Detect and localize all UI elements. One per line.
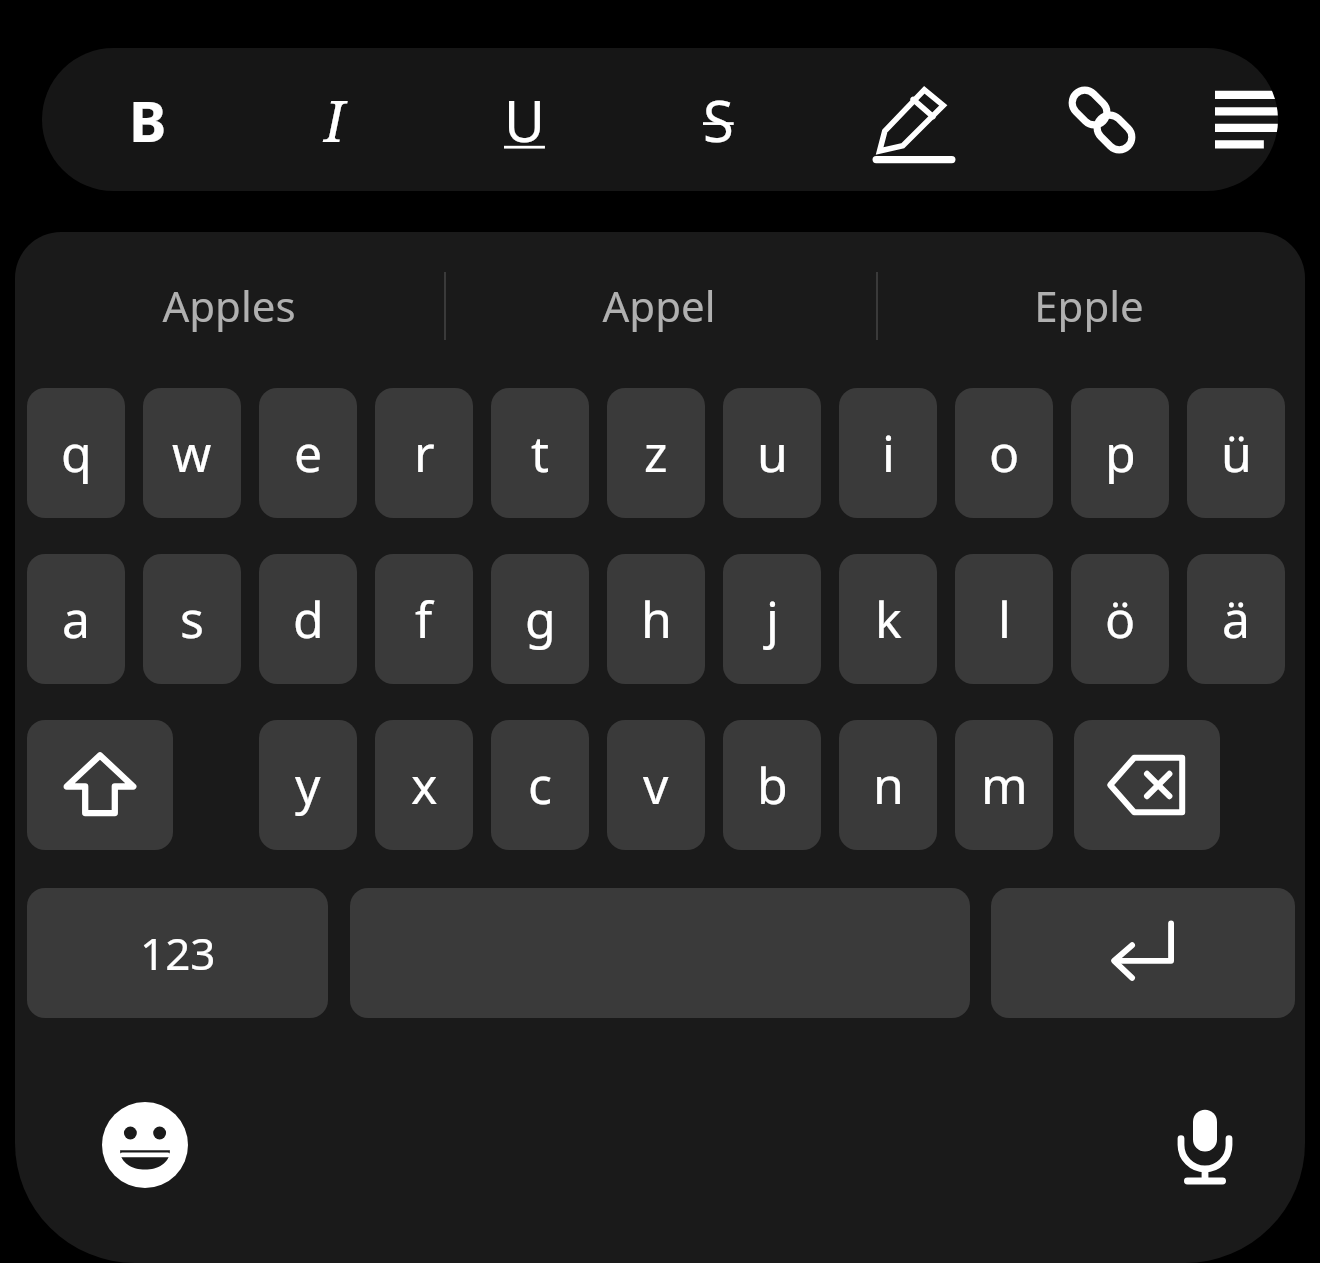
button[interactable]: ö <box>1071 554 1169 684</box>
staticText: w <box>172 419 212 487</box>
button[interactable]: Enter <box>991 888 1295 1018</box>
button[interactable]: t <box>491 388 589 518</box>
button[interactable]: m <box>955 720 1053 850</box>
button[interactable]: ü <box>1187 388 1285 518</box>
button[interactable]: r <box>375 388 473 518</box>
staticText: r <box>414 419 435 487</box>
button[interactable]: k <box>839 554 937 684</box>
staticText: p <box>1105 419 1136 487</box>
button[interactable]: Appel <box>479 250 839 360</box>
button[interactable]: S <box>658 59 778 180</box>
staticText: x <box>411 751 438 819</box>
staticText: b <box>757 751 788 819</box>
staticText: o <box>989 419 1020 487</box>
staticText: t <box>531 419 550 487</box>
button[interactable]: f <box>375 554 473 684</box>
staticText: Epple <box>1034 277 1144 334</box>
button[interactable]: Shift <box>27 720 173 850</box>
button[interactable]: g <box>491 554 589 684</box>
staticText: f <box>415 585 433 653</box>
button[interactable]: e <box>259 388 357 518</box>
staticText: e <box>294 419 323 487</box>
staticText: u <box>757 419 788 487</box>
button[interactable]: U <box>464 59 584 180</box>
staticText: n <box>873 751 904 819</box>
button[interactable]: List <box>1188 59 1278 180</box>
button[interactable]: Emoji <box>90 1090 200 1200</box>
staticText: Apples <box>162 277 296 334</box>
staticText: I <box>324 82 345 158</box>
button[interactable]: z <box>607 388 705 518</box>
staticText: c <box>528 751 552 819</box>
staticText: h <box>641 585 672 653</box>
staticText: y <box>295 751 321 819</box>
button[interactable]: Voice input <box>1150 1090 1260 1200</box>
staticText: B <box>129 82 167 158</box>
button[interactable]: w <box>143 388 241 518</box>
button[interactable]: b <box>723 720 821 850</box>
button[interactable]: h <box>607 554 705 684</box>
staticText: q <box>61 419 92 487</box>
button[interactable]: p <box>1071 388 1169 518</box>
button[interactable]: Backspace <box>1074 720 1220 850</box>
staticText: ö <box>1105 585 1136 653</box>
button[interactable]: i <box>839 388 937 518</box>
staticText: Appel <box>602 277 716 334</box>
staticText: s <box>180 585 204 653</box>
staticText: k <box>875 585 902 653</box>
button[interactable]: u <box>723 388 821 518</box>
staticText: i <box>882 419 895 487</box>
button[interactable]: Apples <box>49 250 409 360</box>
button[interactable]: c <box>491 720 589 850</box>
staticText: S <box>703 82 734 158</box>
button[interactable]: Highlight <box>854 59 974 180</box>
button[interactable]: Insert link <box>1042 59 1162 180</box>
button[interactable]: j <box>723 554 821 684</box>
staticText: z <box>644 419 668 487</box>
staticText: U <box>504 82 545 158</box>
staticText: v <box>643 751 669 819</box>
button[interactable]: n <box>839 720 937 850</box>
button[interactable]: Epple <box>909 250 1269 360</box>
button[interactable]: x <box>375 720 473 850</box>
staticText: d <box>293 585 324 653</box>
button[interactable]: o <box>955 388 1053 518</box>
button[interactable]: 123 <box>27 888 328 1018</box>
staticText: j <box>766 585 779 653</box>
staticText: l <box>998 585 1011 653</box>
staticText: m <box>981 751 1028 819</box>
button[interactable]: s <box>143 554 241 684</box>
staticText: 123 <box>140 923 216 983</box>
staticText: ä <box>1222 585 1251 653</box>
button[interactable]: a <box>27 554 125 684</box>
staticText: a <box>62 585 91 653</box>
staticText: g <box>525 585 556 653</box>
button[interactable]: y <box>259 720 357 850</box>
button[interactable]: l <box>955 554 1053 684</box>
button[interactable]: d <box>259 554 357 684</box>
button[interactable]: v <box>607 720 705 850</box>
button[interactable]: B <box>88 59 208 180</box>
button[interactable]: I <box>274 59 394 180</box>
button[interactable]: ä <box>1187 554 1285 684</box>
staticText: ü <box>1221 419 1252 487</box>
button[interactable]: q <box>27 388 125 518</box>
